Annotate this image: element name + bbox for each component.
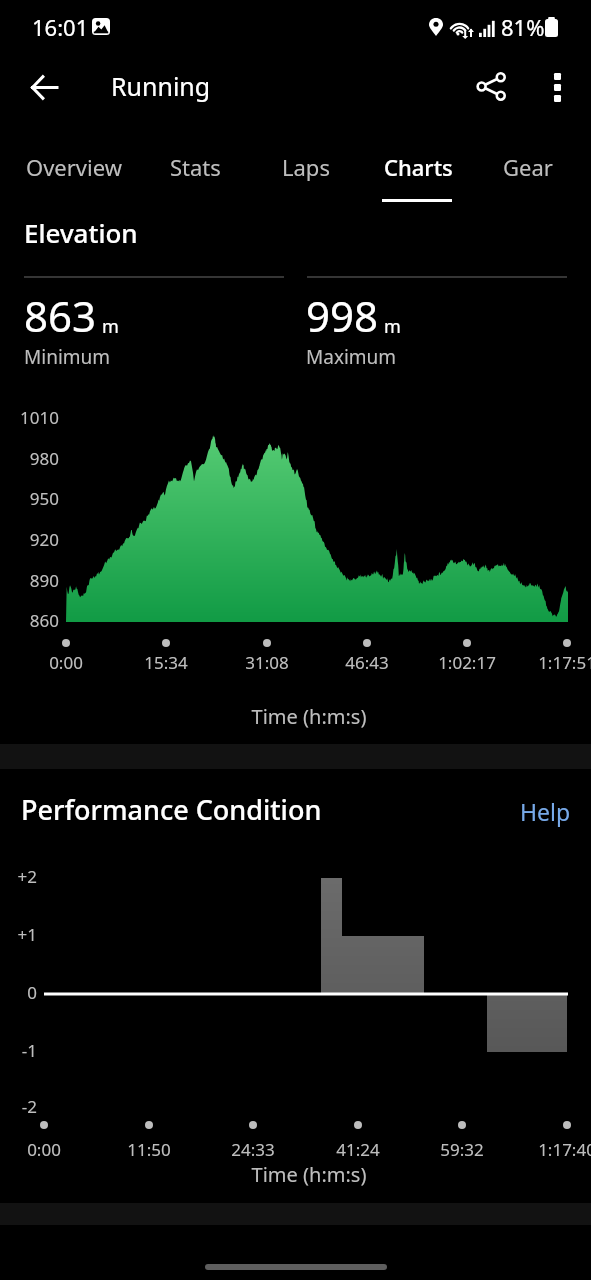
staticText: Gear <box>503 152 553 182</box>
staticText: 11:50 <box>89 1138 209 1161</box>
button[interactable]: Laps <box>251 130 361 202</box>
staticText: +2 <box>0 865 37 888</box>
staticText: Overview <box>26 152 122 182</box>
button[interactable]: Charts <box>363 130 473 202</box>
button[interactable]: Gear <box>473 130 583 202</box>
staticText: -1 <box>0 1039 37 1062</box>
staticText: 920 <box>0 528 59 551</box>
button[interactable]: Overview <box>19 130 129 202</box>
staticText: m <box>384 314 401 339</box>
staticText: 1010 <box>0 406 59 429</box>
staticText: Running <box>111 69 211 103</box>
staticText: 863 <box>24 287 97 344</box>
staticText: 46:43 <box>307 651 427 674</box>
staticText: m <box>102 314 119 339</box>
staticText: Elevation <box>24 215 138 250</box>
staticText: 950 <box>0 487 59 510</box>
staticText: 1:17:51 <box>507 651 591 674</box>
button[interactable]: Help <box>508 786 583 837</box>
button[interactable]: Share <box>466 61 516 111</box>
staticText: 0:00 <box>0 1138 104 1161</box>
staticText: 31:08 <box>207 651 327 674</box>
staticText: Time (h:m:s) <box>58 1161 560 1188</box>
staticText: Maximum <box>306 344 397 370</box>
staticText: -2 <box>0 1095 37 1118</box>
staticText: Stats <box>170 152 221 182</box>
staticText: 41:24 <box>298 1138 418 1161</box>
staticText: Performance Condition <box>21 791 322 828</box>
staticText: 16:01 <box>32 12 89 42</box>
button[interactable]: Stats <box>140 130 250 202</box>
staticText: 24:33 <box>193 1138 313 1161</box>
staticText: Laps <box>282 152 330 182</box>
staticText: 860 <box>0 609 59 632</box>
staticText: 81% <box>501 12 545 42</box>
staticText: 0:00 <box>6 651 126 674</box>
staticText: Charts <box>384 152 453 182</box>
button[interactable]: More options <box>533 63 581 111</box>
staticText: 59:32 <box>402 1138 522 1161</box>
staticText: 15:34 <box>106 651 226 674</box>
staticText: 0 <box>0 981 37 1004</box>
staticText: Minimum <box>24 344 111 370</box>
staticText: 890 <box>0 569 59 592</box>
staticText: 1:02:17 <box>407 651 527 674</box>
staticText: 1:17:40 <box>507 1138 591 1161</box>
button[interactable]: Back <box>20 63 68 111</box>
staticText: Help <box>520 796 571 827</box>
staticText: Time (h:m:s) <box>58 703 560 730</box>
staticText: 980 <box>0 447 59 470</box>
staticText: 998 <box>306 287 379 344</box>
staticText: +1 <box>0 923 37 946</box>
